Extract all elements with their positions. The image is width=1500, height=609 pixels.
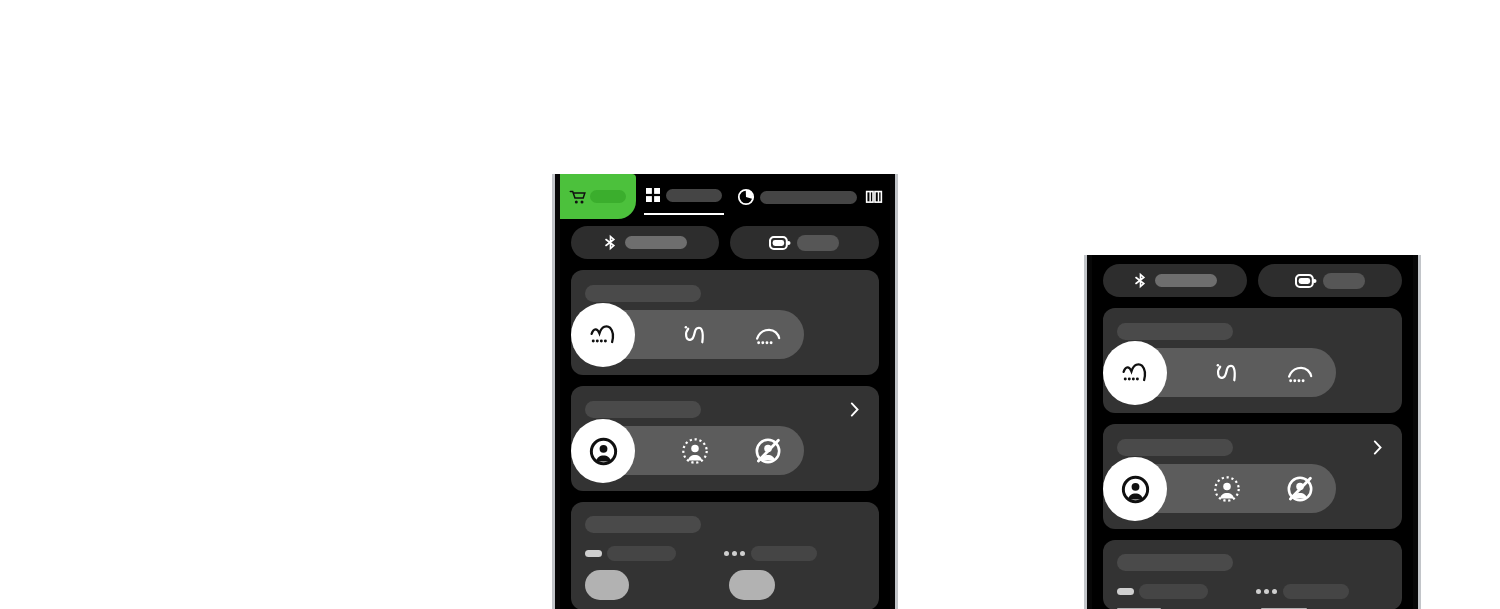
button[interactable]: Dashboard tab [644,174,724,219]
button[interactable]: Selected style [1103,457,1167,521]
button[interactable]: Style option 1 [1103,308,1402,413]
button[interactable]: Style option 2 [658,310,731,359]
button[interactable]: Style option 3 [1263,348,1336,397]
button[interactable]: Open details [1103,424,1402,529]
button[interactable]: Style option 2 [1190,464,1263,513]
button[interactable]: Style option 1 [1116,348,1190,397]
button[interactable]: Primary action [1103,540,1402,609]
button[interactable]: Style option 1 [584,310,658,359]
button[interactable]: Bluetooth [1103,264,1247,297]
button[interactable]: Primary action [585,570,629,600]
button[interactable]: Open details [571,386,879,491]
button[interactable]: Style option 3 [1263,464,1336,513]
button[interactable]: Style option 2 [1190,348,1263,397]
button[interactable]: Open details [1364,434,1390,460]
button[interactable]: Style option 3 [731,310,804,359]
button[interactable]: Primary action [1117,608,1161,609]
button[interactable]: Primary action [571,502,879,609]
button[interactable]: Secondary action [729,570,775,600]
button[interactable]: Battery [730,226,879,259]
button[interactable]: Style option 1 [1116,464,1190,513]
button[interactable]: Selected style [571,303,635,367]
button[interactable]: Style option 3 [731,426,804,475]
button[interactable]: Secondary action [1261,608,1307,609]
button[interactable]: Shop tab [560,174,636,219]
button[interactable]: Style option 1 [571,270,879,375]
button[interactable]: Bluetooth [571,226,719,259]
button[interactable]: Selected style [1103,341,1167,405]
button[interactable]: Style option 2 [658,426,731,475]
button[interactable]: Open details [841,396,867,422]
button[interactable]: Selected style [571,419,635,483]
button[interactable]: Reports tab [738,189,857,205]
button[interactable]: Style option 1 [584,426,658,475]
button[interactable]: Battery [1258,264,1402,297]
button[interactable]: Catalog [863,186,885,208]
